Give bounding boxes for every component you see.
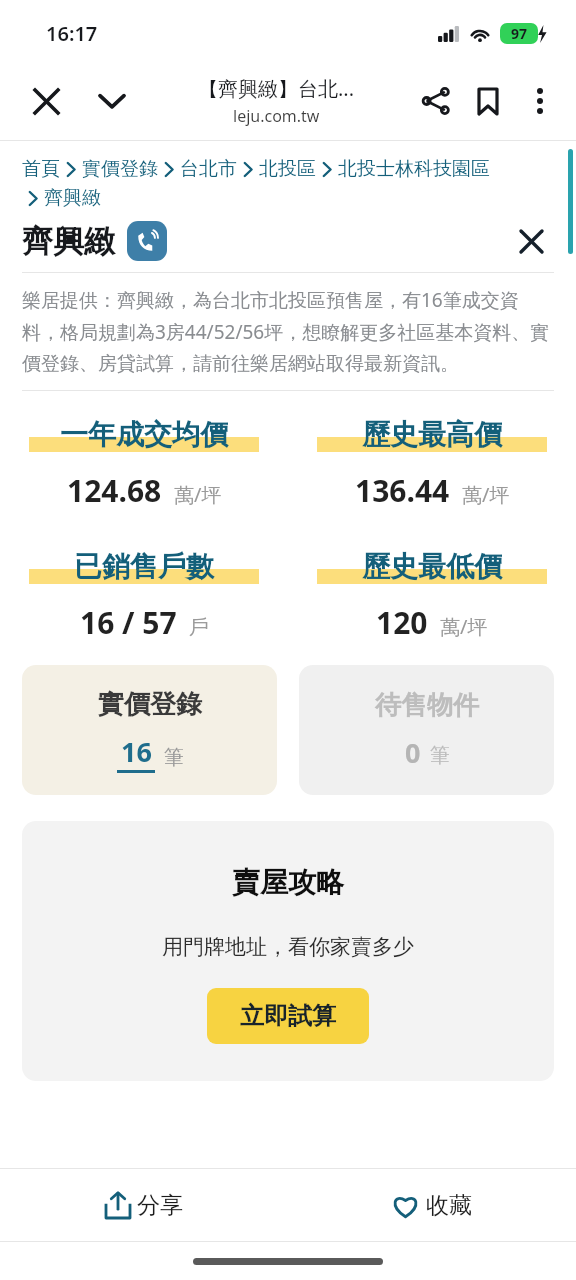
button[interactable]: Bookmark	[462, 75, 514, 127]
button[interactable]: 待售物件	[299, 665, 554, 795]
staticText: 萬/坪	[440, 613, 488, 640]
button[interactable]: Share	[410, 75, 462, 127]
staticText: 立即試算	[240, 1001, 336, 1031]
staticText: 分享	[137, 1191, 183, 1220]
staticText: 齊興緻	[22, 222, 115, 261]
staticText: 【齊興緻】台北...	[198, 75, 355, 102]
button[interactable]: 收藏	[288, 1169, 576, 1241]
staticText: 賣屋攻略	[232, 865, 344, 900]
button[interactable]: Collapse	[86, 75, 138, 127]
staticText: 實價登錄	[98, 688, 202, 721]
staticText: 待售物件	[375, 689, 479, 722]
button[interactable]: 立即試算	[207, 988, 369, 1044]
button[interactable]: 台北市	[180, 157, 237, 181]
staticText: 萬/坪	[174, 481, 222, 508]
staticText: 萬/坪	[462, 481, 510, 508]
button[interactable]: 齊興緻	[44, 186, 101, 210]
staticText: 0	[405, 734, 421, 771]
button[interactable]: 首頁	[22, 157, 60, 181]
staticText: 收藏	[426, 1191, 472, 1220]
staticText: 用門牌地址，看你家賣多少	[162, 934, 414, 960]
button[interactable]: 實價登錄	[82, 157, 158, 181]
button[interactable]: 北投士林科技園區	[338, 157, 490, 181]
button[interactable]: 北投區	[259, 157, 316, 181]
staticText: 歷史最高價	[362, 417, 502, 452]
staticText: 136.44	[355, 470, 450, 511]
button[interactable]: More options	[514, 75, 566, 127]
staticText: 124.68	[67, 470, 162, 511]
staticText: 一年成交均價	[60, 417, 228, 452]
staticText: leju.com.tw	[233, 105, 320, 127]
staticText: 筆	[430, 743, 450, 768]
staticText: 筆	[164, 745, 184, 770]
staticText: 97	[511, 24, 528, 43]
staticText: 已銷售戶數	[74, 549, 214, 584]
staticText: 戶	[189, 615, 209, 640]
staticText: 120	[376, 602, 428, 643]
button[interactable]: 實價登錄	[22, 665, 277, 795]
button[interactable]: Close panel	[508, 218, 554, 264]
staticText: 16:17	[46, 20, 98, 47]
button[interactable]: Call	[127, 221, 167, 261]
button[interactable]: Close	[20, 75, 72, 127]
staticText: 歷史最低價	[362, 549, 502, 584]
staticText: 樂居提供：齊興緻，為台北市北投區預售屋，有16筆成交資料，格局規劃為3房44/5…	[22, 287, 554, 376]
button[interactable]: 分享	[0, 1169, 288, 1241]
staticText: 16 / 57	[80, 602, 177, 643]
staticText: 16	[121, 733, 152, 770]
